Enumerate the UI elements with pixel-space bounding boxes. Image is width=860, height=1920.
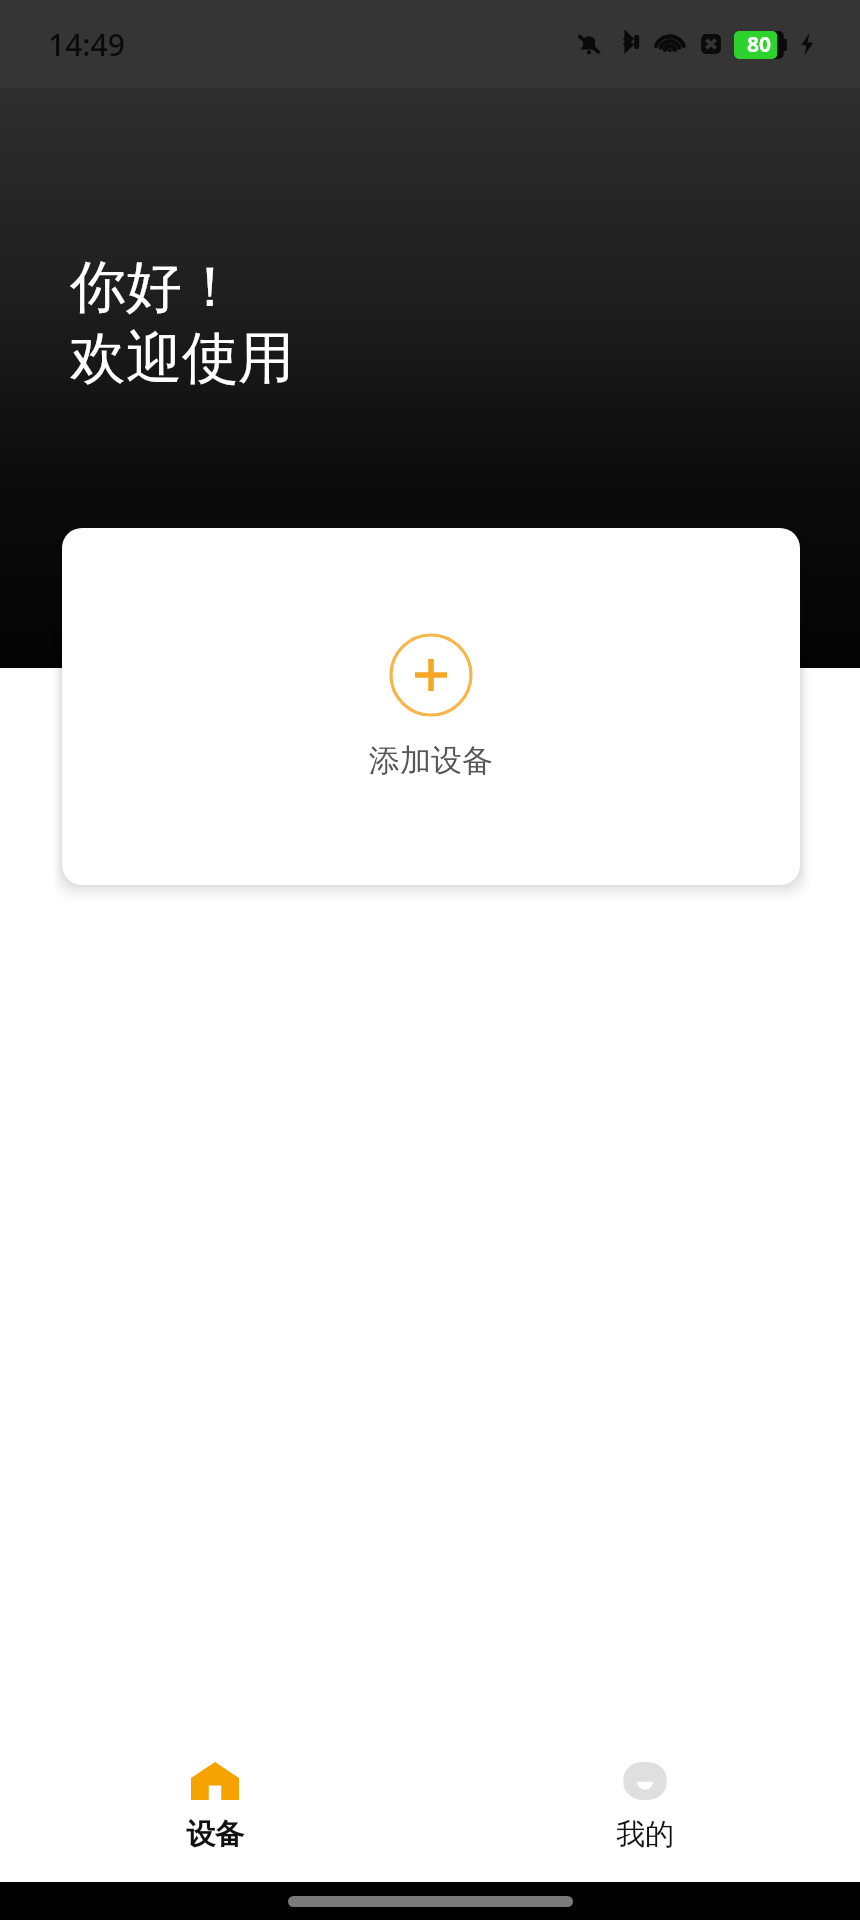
staticText: 80 <box>747 30 772 59</box>
staticText: 你好！ <box>70 252 238 323</box>
staticText: 添加设备 <box>369 741 493 780</box>
staticText: 设备 <box>186 1816 244 1853</box>
staticText: 欢迎使用 <box>70 323 294 394</box>
button[interactable]: 添加设备 <box>62 528 800 885</box>
staticText: 14:49 <box>48 24 125 65</box>
staticText: 我的 <box>616 1816 674 1853</box>
button[interactable]: 设备 <box>0 1732 430 1882</box>
button[interactable]: 我的 <box>430 1732 860 1882</box>
